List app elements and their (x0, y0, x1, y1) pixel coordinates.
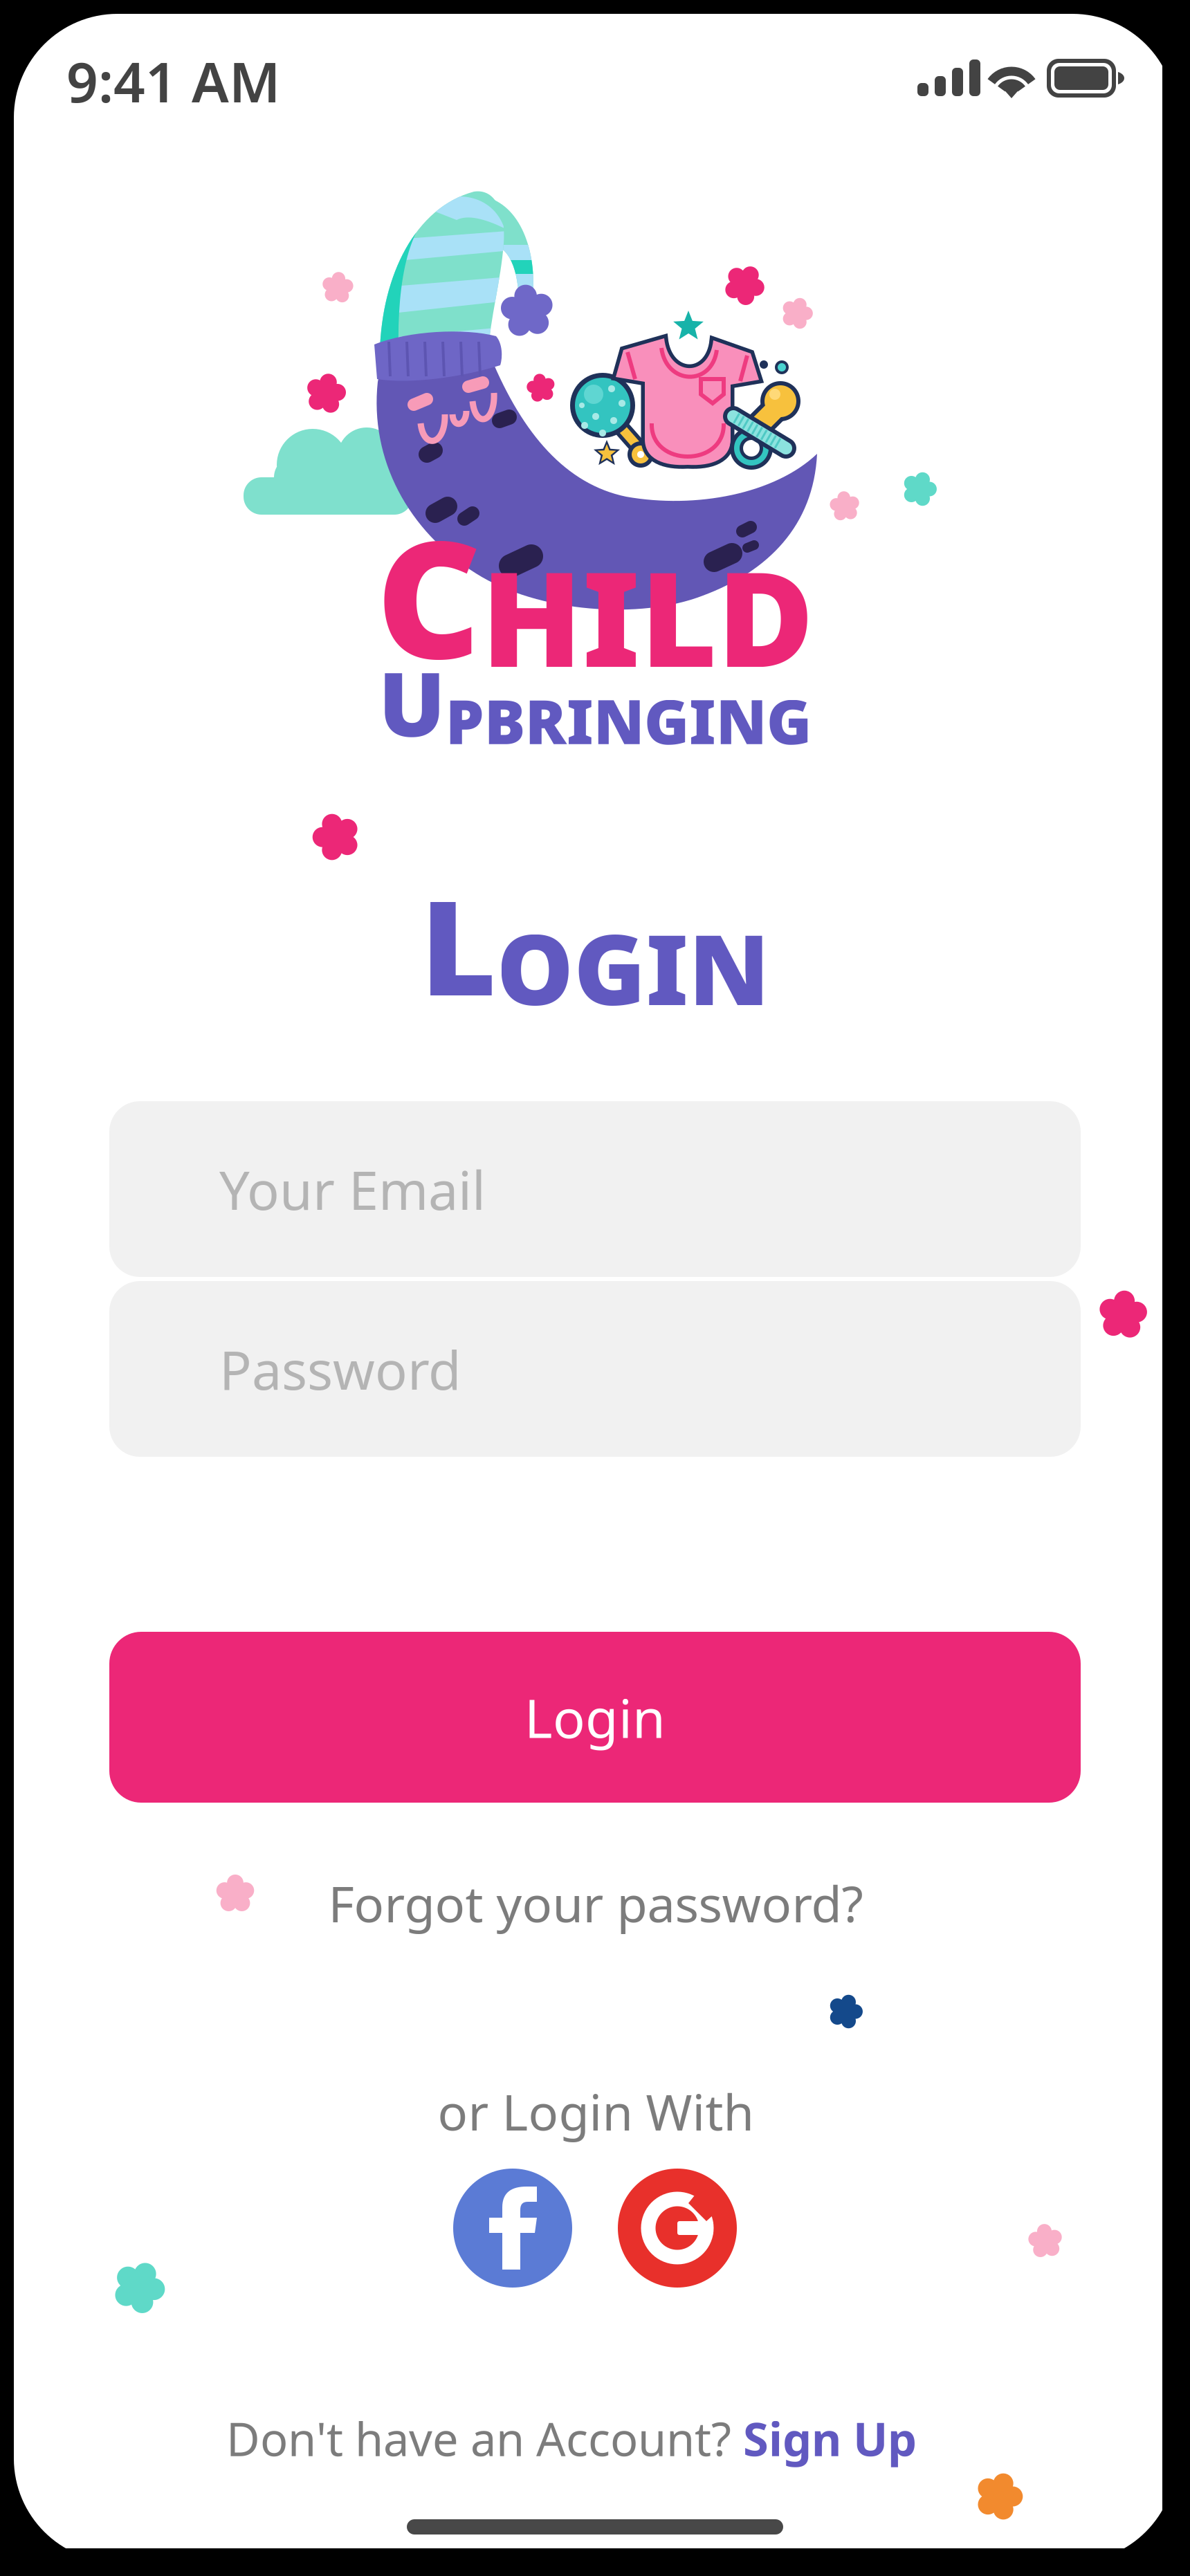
button[interactable]: Login with Facebook (453, 2169, 572, 2288)
staticText: Don't have an Account? (226, 2408, 743, 2469)
staticText: OGIN (496, 903, 770, 1032)
staticText: 9:41 AM (66, 44, 280, 118)
staticText: C (376, 488, 481, 703)
button[interactable]: Forgot your password? (250, 1861, 942, 1944)
staticText: U (378, 643, 446, 761)
staticText: HILD (481, 528, 814, 703)
staticText: L (420, 858, 496, 1032)
staticText: Password (219, 1333, 461, 1404)
button[interactable]: Login (109, 1632, 1081, 1803)
button[interactable]: Don't have an Account? (156, 2400, 987, 2476)
button[interactable]: Login with Google (618, 2169, 737, 2288)
staticText: Forgot your password? (328, 1870, 863, 1936)
staticText: Login (524, 1682, 666, 1753)
staticText: Sign Up (743, 2408, 917, 2469)
staticText: PBRINGING (446, 680, 812, 761)
staticText: Your Email (219, 1154, 486, 1225)
staticText: or Login With (438, 2078, 754, 2144)
